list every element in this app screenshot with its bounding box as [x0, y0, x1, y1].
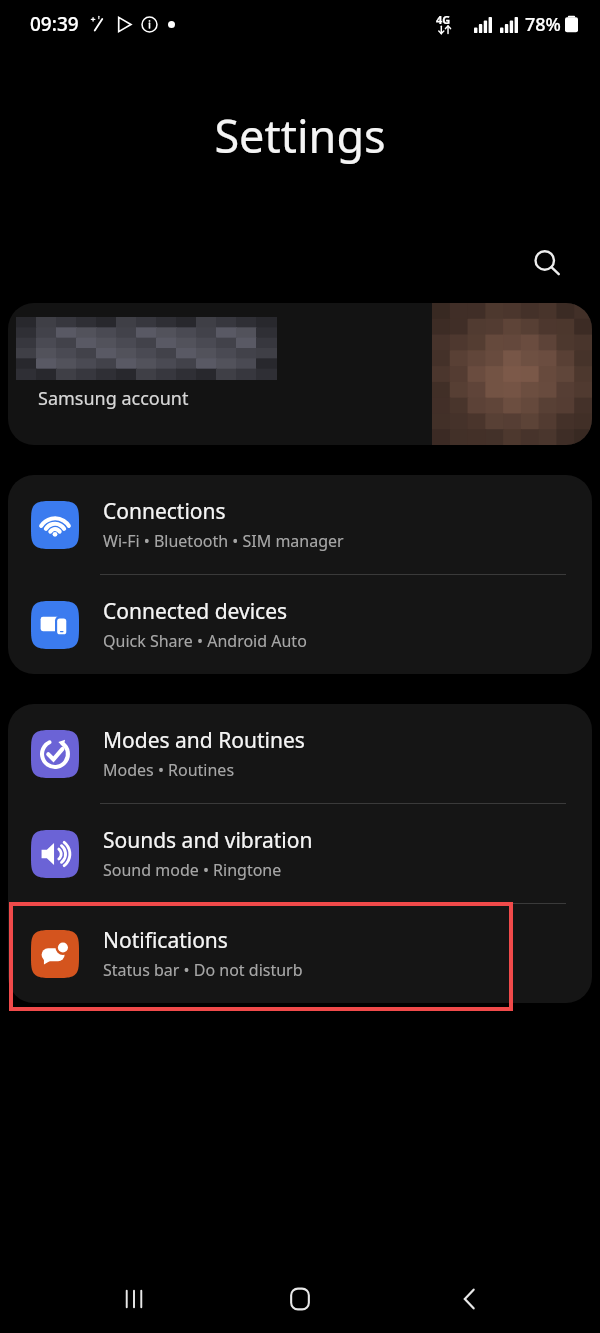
staticText: Connections [103, 497, 226, 526]
button[interactable]: Home [270, 1269, 330, 1329]
staticText: Modes and Routines [103, 726, 305, 755]
button[interactable]: Notifications [8, 904, 592, 1003]
staticText: Notifications [103, 926, 228, 955]
button[interactable]: Search settings [520, 236, 574, 290]
button[interactable]: Samsung account [8, 303, 592, 445]
staticText: 4G [436, 12, 451, 27]
staticText: Samsung account [38, 386, 189, 411]
button[interactable]: Recents [104, 1269, 164, 1329]
staticText: 78% [525, 12, 561, 37]
button[interactable]: Modes and Routines [8, 704, 592, 803]
button[interactable]: Sounds and vibration [8, 804, 592, 903]
staticText: Settings [214, 105, 386, 166]
button[interactable]: Connections [8, 475, 592, 574]
staticText: Quick Share • Android Auto [103, 630, 307, 652]
staticText: 09:39 [30, 11, 79, 37]
staticText: Status bar • Do not disturb [103, 959, 303, 981]
button[interactable]: Connected devices [8, 575, 592, 674]
staticText: Wi-Fi • Bluetooth • SIM manager [103, 530, 344, 552]
staticText: Sound mode • Ringtone [103, 859, 282, 881]
staticText: Connected devices [103, 597, 288, 626]
button[interactable]: Back [440, 1269, 500, 1329]
staticText: Sounds and vibration [103, 826, 313, 855]
staticText: Modes • Routines [103, 759, 235, 781]
